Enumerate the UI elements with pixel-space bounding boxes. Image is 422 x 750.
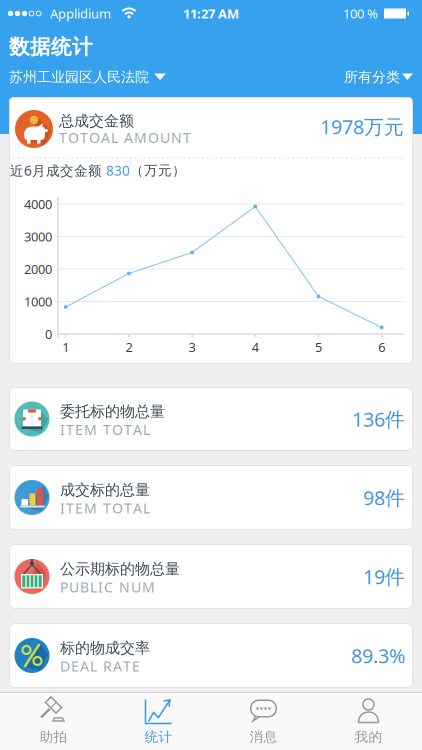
staticText: 830: [106, 161, 130, 180]
button[interactable]: 我的: [316, 693, 421, 749]
staticText: 0: [45, 325, 52, 343]
button[interactable]: 委托标的物总量: [9, 387, 413, 451]
staticText: 100 %: [343, 5, 378, 22]
staticText: I T E M T O T A L: [60, 498, 150, 518]
staticText: 1000: [24, 293, 52, 310]
staticText: 2: [125, 338, 132, 356]
staticText: 3: [189, 338, 196, 356]
staticText: 苏州工业园区人民法院: [9, 68, 149, 86]
staticText: P U B L I C N U M: [60, 577, 155, 597]
staticText: 3000: [24, 228, 52, 245]
staticText: 4: [252, 338, 259, 356]
staticText: 公示期标的物总量: [60, 560, 180, 578]
staticText: 我的: [354, 728, 382, 745]
staticText: 所有分类: [344, 68, 400, 86]
staticText: 11:27 AM: [183, 5, 239, 22]
button[interactable]: 苏州工业园区人民法院: [9, 62, 189, 92]
staticText: Applidium: [50, 5, 111, 22]
staticText: （万元）: [130, 162, 186, 179]
staticText: 89.3%: [351, 642, 405, 669]
staticText: D E A L R A T E: [60, 656, 140, 676]
staticText: 近6月成交金额: [10, 161, 106, 180]
staticText: 6: [378, 338, 385, 356]
staticText: 2000: [24, 260, 52, 278]
button[interactable]: 统计: [106, 693, 211, 749]
staticText: 4000: [24, 195, 52, 213]
staticText: 1: [62, 338, 69, 356]
staticText: 消息: [249, 728, 277, 745]
button[interactable]: 所有分类: [302, 62, 412, 92]
staticText: 标的物成交率: [60, 639, 150, 657]
staticText: 助拍: [39, 728, 67, 745]
staticText: 136件: [352, 406, 405, 432]
staticText: 总成交金额: [59, 112, 134, 130]
staticText: 成交标的总量: [60, 481, 150, 499]
staticText: I T E M T O T A L: [60, 420, 150, 439]
button[interactable]: 标的物成交率: [9, 623, 413, 688]
button[interactable]: 助拍: [1, 693, 106, 749]
button[interactable]: 消息: [211, 693, 316, 749]
staticText: 统计: [144, 728, 172, 745]
staticText: 1978万元: [320, 113, 404, 140]
staticText: 5: [315, 338, 322, 356]
staticText: T O T O A L A M O U N T: [59, 128, 191, 147]
staticText: 数据统计: [9, 34, 93, 60]
button[interactable]: 公示期标的物总量: [9, 544, 413, 609]
staticText: 19件: [363, 563, 405, 590]
staticText: 委托标的物总量: [60, 402, 165, 421]
button[interactable]: 成交标的总量: [9, 465, 413, 530]
staticText: 98件: [363, 484, 405, 511]
